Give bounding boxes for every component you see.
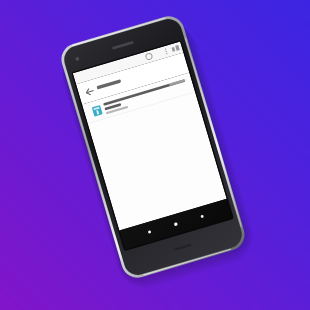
button[interactable]: Downloads app preview artwork bbox=[0, 0, 310, 310]
